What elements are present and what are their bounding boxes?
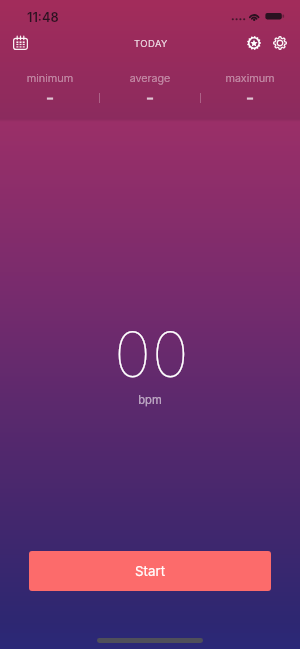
button[interactable]: Settings xyxy=(267,30,293,56)
staticText: 11:48 xyxy=(27,10,59,25)
button[interactable]: Calendar xyxy=(7,30,33,56)
staticText: average xyxy=(100,71,200,84)
staticText: bpm xyxy=(0,393,300,407)
staticText: 00 xyxy=(2,317,300,392)
staticText: minimum xyxy=(0,71,100,84)
staticText: TODAY xyxy=(1,38,300,49)
staticText: maximum xyxy=(200,71,300,84)
button[interactable]: Start xyxy=(29,551,271,591)
button[interactable]: Premium xyxy=(241,30,267,56)
staticText: Start xyxy=(135,563,165,579)
